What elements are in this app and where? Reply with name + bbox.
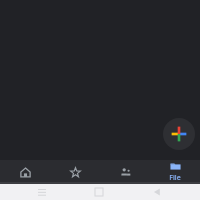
button[interactable]: Shared xyxy=(100,160,150,184)
button[interactable]: Back xyxy=(142,184,172,200)
button[interactable]: Home xyxy=(0,160,50,184)
staticText: File xyxy=(169,173,181,183)
button[interactable]: File xyxy=(150,160,200,184)
button[interactable]: Starred xyxy=(50,160,100,184)
button[interactable]: Create new xyxy=(163,118,195,150)
button[interactable]: Recents xyxy=(27,184,57,200)
button[interactable]: Home xyxy=(84,184,114,200)
